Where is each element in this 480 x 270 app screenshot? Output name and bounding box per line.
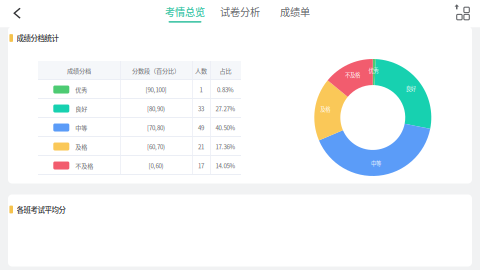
staticText: 17.36% [215,142,235,151]
staticText: 优秀 [75,85,87,94]
staticText: [90,100] [145,85,166,94]
staticText: 分数段（百分比） [132,66,180,75]
button[interactable]: 成绩单 [267,1,322,25]
staticText: 良好 [75,104,87,113]
button[interactable]: Back [0,0,34,27]
button[interactable]: Scan QR code [446,0,480,27]
button[interactable]: 试卷分析 [212,1,267,25]
staticText: 40.50% [215,123,235,132]
staticText: 27.27% [215,104,235,113]
staticText: 优秀 [369,67,379,74]
staticText: 良好 [406,85,416,92]
staticText: 14.05% [215,161,235,170]
staticText: 各班考试平均分 [16,204,65,215]
staticText: 中等 [371,159,381,167]
staticText: 49 [198,123,204,132]
staticText: 考情总览 [165,4,205,19]
staticText: 及格 [75,142,87,151]
staticText: 成绩分档统计 [16,33,58,43]
staticText: 试卷分析 [220,4,260,19]
button[interactable]: 考情总览 [157,1,212,25]
staticText: [60,70) [147,142,165,151]
staticText: 33 [198,104,204,113]
staticText: 及格 [320,105,330,113]
staticText: 17 [198,161,204,170]
staticText: 成绩单 [280,4,310,19]
staticText: [0,60) [148,161,163,170]
staticText: 不及格 [345,71,360,78]
staticText: [70,80) [147,123,165,132]
staticText: 21 [198,142,204,151]
staticText: 成绩分档 [67,66,91,75]
staticText: 占比 [219,66,231,75]
staticText: 中等 [75,123,87,132]
staticText: 人数 [195,66,207,75]
staticText: 1 [199,85,202,94]
staticText: [80,90) [147,104,165,113]
staticText: 0.83% [217,85,234,94]
staticText: 不及格 [75,161,93,170]
